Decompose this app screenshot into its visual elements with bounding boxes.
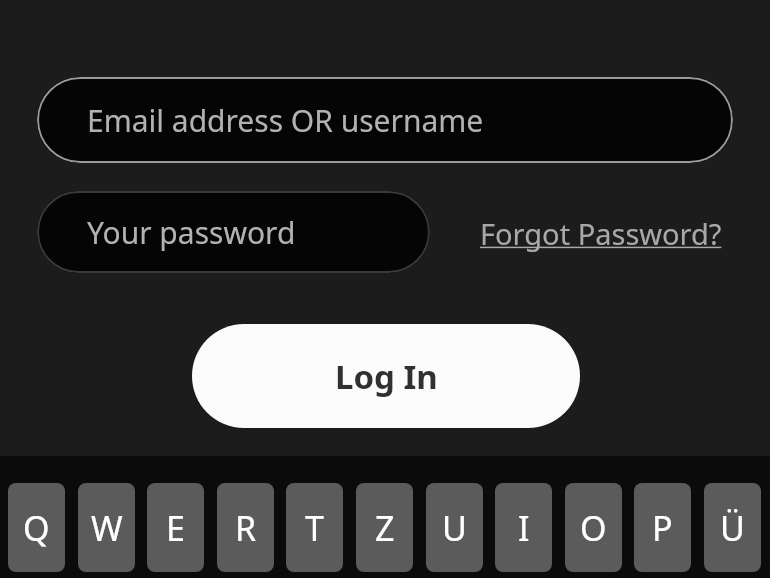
button[interactable]: Forgot Password? bbox=[466, 205, 736, 261]
staticText: I bbox=[518, 505, 530, 551]
button[interactable]: Key I bbox=[495, 483, 552, 572]
button[interactable]: Key O bbox=[565, 483, 622, 572]
staticText: O bbox=[580, 505, 607, 551]
staticText: W bbox=[91, 505, 123, 551]
staticText: Forgot Password? bbox=[480, 214, 722, 253]
button[interactable]: Key Z bbox=[356, 483, 413, 572]
staticText: Q bbox=[23, 505, 50, 551]
staticText: Z bbox=[375, 505, 395, 551]
staticText: Ü bbox=[720, 505, 745, 551]
button[interactable]: Key Q bbox=[8, 483, 65, 572]
button[interactable]: Key E bbox=[147, 483, 204, 572]
staticText: T bbox=[305, 505, 324, 551]
staticText: Email address OR username bbox=[87, 100, 484, 141]
button[interactable]: Log In bbox=[192, 324, 580, 428]
staticText: Log In bbox=[335, 354, 438, 399]
button[interactable]: Your password bbox=[37, 191, 430, 273]
button[interactable]: Key Ü bbox=[704, 483, 761, 572]
staticText: U bbox=[442, 505, 467, 551]
staticText: E bbox=[166, 505, 185, 551]
button[interactable]: Key U bbox=[426, 483, 483, 572]
staticText: P bbox=[652, 505, 673, 551]
staticText: Your password bbox=[87, 212, 296, 253]
button[interactable]: Key W bbox=[78, 483, 135, 572]
staticText: R bbox=[235, 505, 257, 551]
button[interactable]: Key R bbox=[217, 483, 274, 572]
button[interactable]: Key P bbox=[634, 483, 691, 572]
button[interactable]: Email address OR username bbox=[37, 77, 733, 163]
button[interactable]: Key T bbox=[286, 483, 343, 572]
